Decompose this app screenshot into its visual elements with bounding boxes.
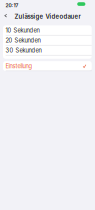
- button[interactable]: 30 Sekunden: [3, 45, 92, 55]
- button[interactable]: Einstellung: [3, 61, 92, 71]
- staticText: 20:17: [5, 2, 18, 8]
- staticText: 30 Sekunden: [6, 47, 42, 54]
- staticText: 10 Sekunden: [6, 27, 40, 34]
- staticText: 20 Sekunden: [6, 37, 41, 44]
- staticText: Zulässige Videodauer: [14, 13, 80, 20]
- button[interactable]: 10 Sekunden: [3, 25, 92, 35]
- button[interactable]: Back: [0, 0, 10, 20]
- staticText: Einstellung: [6, 63, 33, 69]
- button[interactable]: 20 Sekunden: [3, 35, 92, 45]
